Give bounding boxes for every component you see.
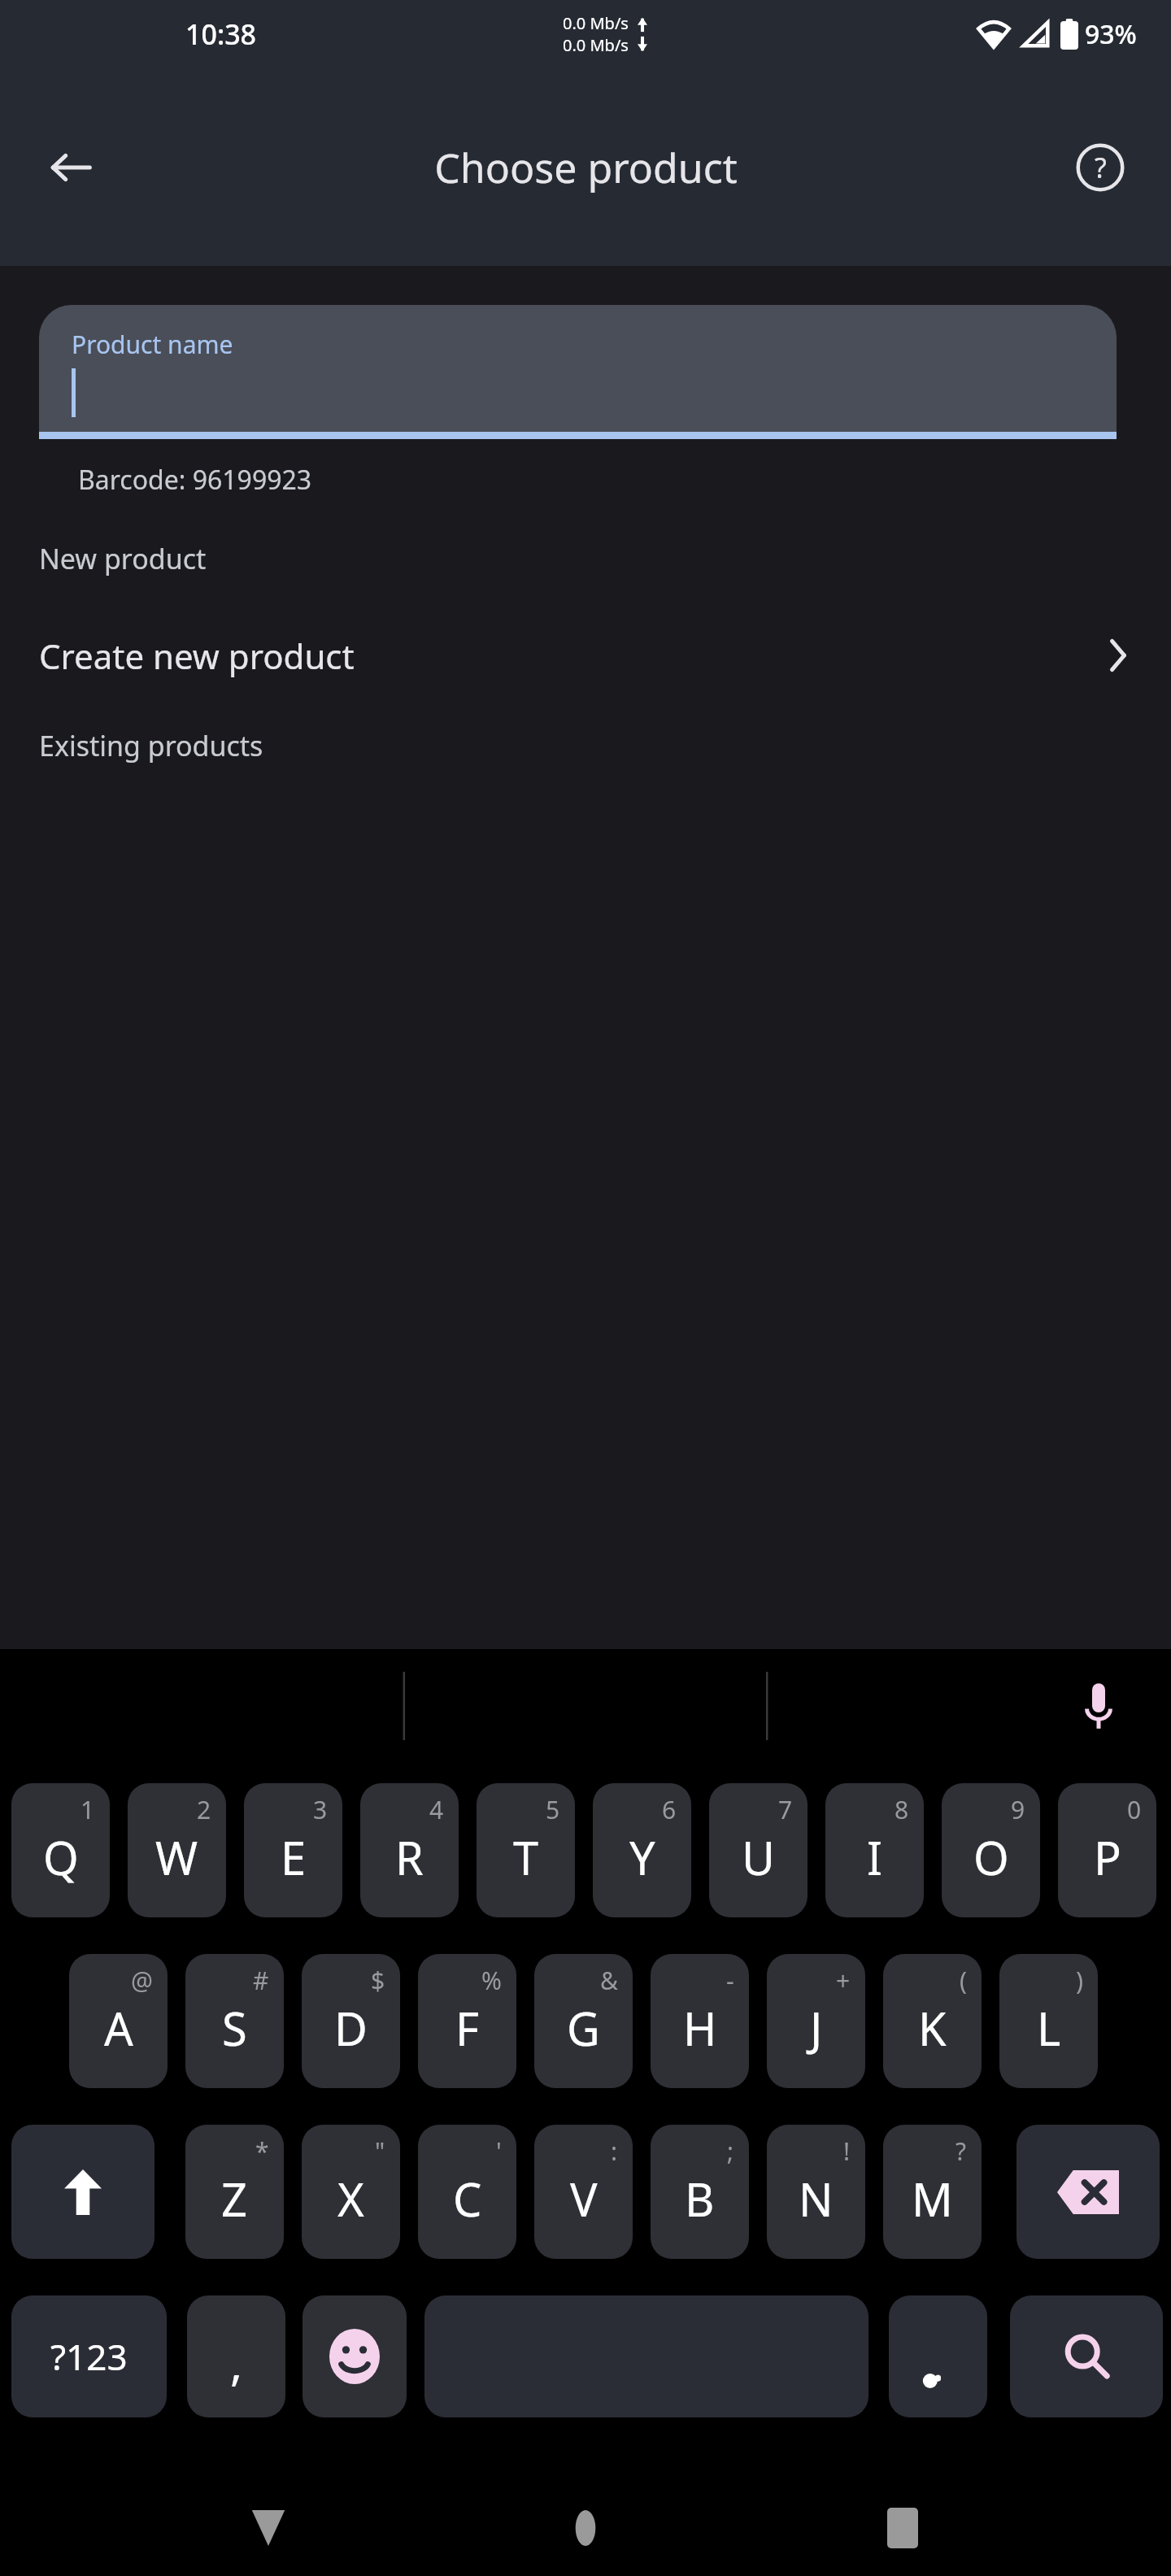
staticText: :	[611, 2134, 618, 2168]
staticText: 1	[81, 1793, 95, 1826]
staticText: *	[255, 2134, 269, 2168]
staticText: A	[104, 1997, 133, 2059]
staticText: 9	[1011, 1793, 1025, 1826]
staticText: T	[513, 1826, 539, 1888]
staticText: Create new product	[39, 633, 355, 679]
button[interactable]: F	[418, 1954, 516, 2088]
staticText: '	[496, 2134, 502, 2168]
staticText: ;	[727, 2134, 734, 2168]
button[interactable]: P	[1058, 1783, 1156, 1917]
staticText: F	[455, 1997, 480, 2059]
button[interactable]: Recent apps	[854, 2480, 951, 2576]
staticText: &	[600, 1964, 618, 1997]
staticText: Choose product	[434, 140, 738, 195]
button[interactable]: O	[942, 1783, 1040, 1917]
staticText: H	[683, 1997, 717, 2059]
staticText: ?	[1095, 149, 1107, 186]
staticText: -	[726, 1964, 734, 1997]
staticText: C	[453, 2168, 482, 2230]
button[interactable]: C	[418, 2125, 516, 2259]
staticText: E	[281, 1826, 307, 1888]
staticText: +	[836, 1964, 851, 1997]
button[interactable]: Help	[1056, 123, 1145, 212]
staticText: K	[918, 1997, 947, 2059]
staticText: L	[1037, 1997, 1061, 2059]
button[interactable]: Product name	[39, 305, 1117, 432]
staticText: 3	[313, 1793, 328, 1826]
button[interactable]: .	[889, 2295, 987, 2417]
staticText: Existing products	[39, 727, 263, 764]
button[interactable]: Space	[424, 2295, 868, 2417]
button[interactable]: D	[302, 1954, 400, 2088]
button[interactable]: E	[244, 1783, 342, 1917]
staticText: 8	[895, 1793, 909, 1826]
button[interactable]: Voice input	[1062, 1669, 1135, 1743]
staticText: I	[867, 1826, 882, 1888]
staticText: B	[685, 2168, 715, 2230]
staticText: New product	[39, 540, 207, 577]
staticText: )	[1076, 1964, 1083, 1997]
staticText: Z	[221, 2168, 248, 2230]
button[interactable]: B	[651, 2125, 749, 2259]
staticText: P	[1094, 1826, 1121, 1888]
staticText: @	[131, 1964, 153, 1997]
button[interactable]: U	[709, 1783, 808, 1917]
button[interactable]: R	[360, 1783, 459, 1917]
button[interactable]: W	[128, 1783, 226, 1917]
staticText: S	[222, 1997, 247, 2059]
staticText: (	[960, 1964, 967, 1997]
staticText: J	[810, 1997, 823, 2059]
button[interactable]: G	[534, 1954, 633, 2088]
button[interactable]: Home	[537, 2480, 634, 2576]
staticText: 2	[197, 1793, 211, 1826]
staticText: "	[375, 2134, 385, 2168]
staticText: X	[337, 2168, 364, 2230]
staticText: ,	[230, 2332, 243, 2394]
button[interactable]: H	[651, 1954, 749, 2088]
staticText: 0	[1127, 1793, 1142, 1826]
staticText: 4	[429, 1793, 444, 1826]
button[interactable]: Back	[26, 123, 115, 212]
staticText: M	[912, 2168, 953, 2230]
staticText: 7	[778, 1793, 793, 1826]
button[interactable]: Z	[185, 2125, 284, 2259]
staticText: %	[481, 1964, 502, 1997]
button[interactable]: Search	[1010, 2295, 1163, 2417]
staticText: D	[334, 1997, 368, 2059]
button[interactable]: M	[883, 2125, 982, 2259]
staticText: N	[799, 2168, 834, 2230]
staticText: 0.0 Mb/s	[563, 12, 629, 34]
button[interactable]: Emoji	[303, 2295, 407, 2417]
button[interactable]: T	[477, 1783, 575, 1917]
staticText: Y	[629, 1826, 655, 1888]
staticText: !	[843, 2134, 851, 2168]
button[interactable]: N	[767, 2125, 865, 2259]
button[interactable]: Y	[593, 1783, 691, 1917]
staticText: W	[155, 1826, 198, 1888]
button[interactable]: Backspace	[1016, 2125, 1160, 2259]
staticText: 10:38	[185, 15, 257, 53]
button[interactable]: L	[999, 1954, 1098, 2088]
button[interactable]: Shift	[11, 2125, 155, 2259]
button[interactable]: K	[883, 1954, 982, 2088]
button[interactable]: Back	[220, 2480, 317, 2576]
staticText: Q	[43, 1826, 79, 1888]
staticText: #	[253, 1964, 269, 1997]
button[interactable]: Q	[11, 1783, 110, 1917]
staticText: V	[570, 2168, 598, 2230]
staticText: 0.0 Mb/s	[563, 34, 629, 56]
button[interactable]: A	[69, 1954, 168, 2088]
button[interactable]: V	[534, 2125, 633, 2259]
staticText: 93%	[1085, 16, 1137, 52]
button[interactable]: S	[185, 1954, 284, 2088]
staticText: O	[973, 1826, 1009, 1888]
button[interactable]: ?123	[11, 2295, 167, 2417]
staticText: U	[742, 1826, 775, 1888]
button[interactable]: I	[825, 1783, 924, 1917]
staticText: ?	[956, 2134, 967, 2168]
button[interactable]: Create new product	[0, 616, 1171, 694]
button[interactable]: ,	[187, 2295, 285, 2417]
staticText: R	[395, 1826, 424, 1888]
button[interactable]: J	[767, 1954, 865, 2088]
button[interactable]: X	[302, 2125, 400, 2259]
